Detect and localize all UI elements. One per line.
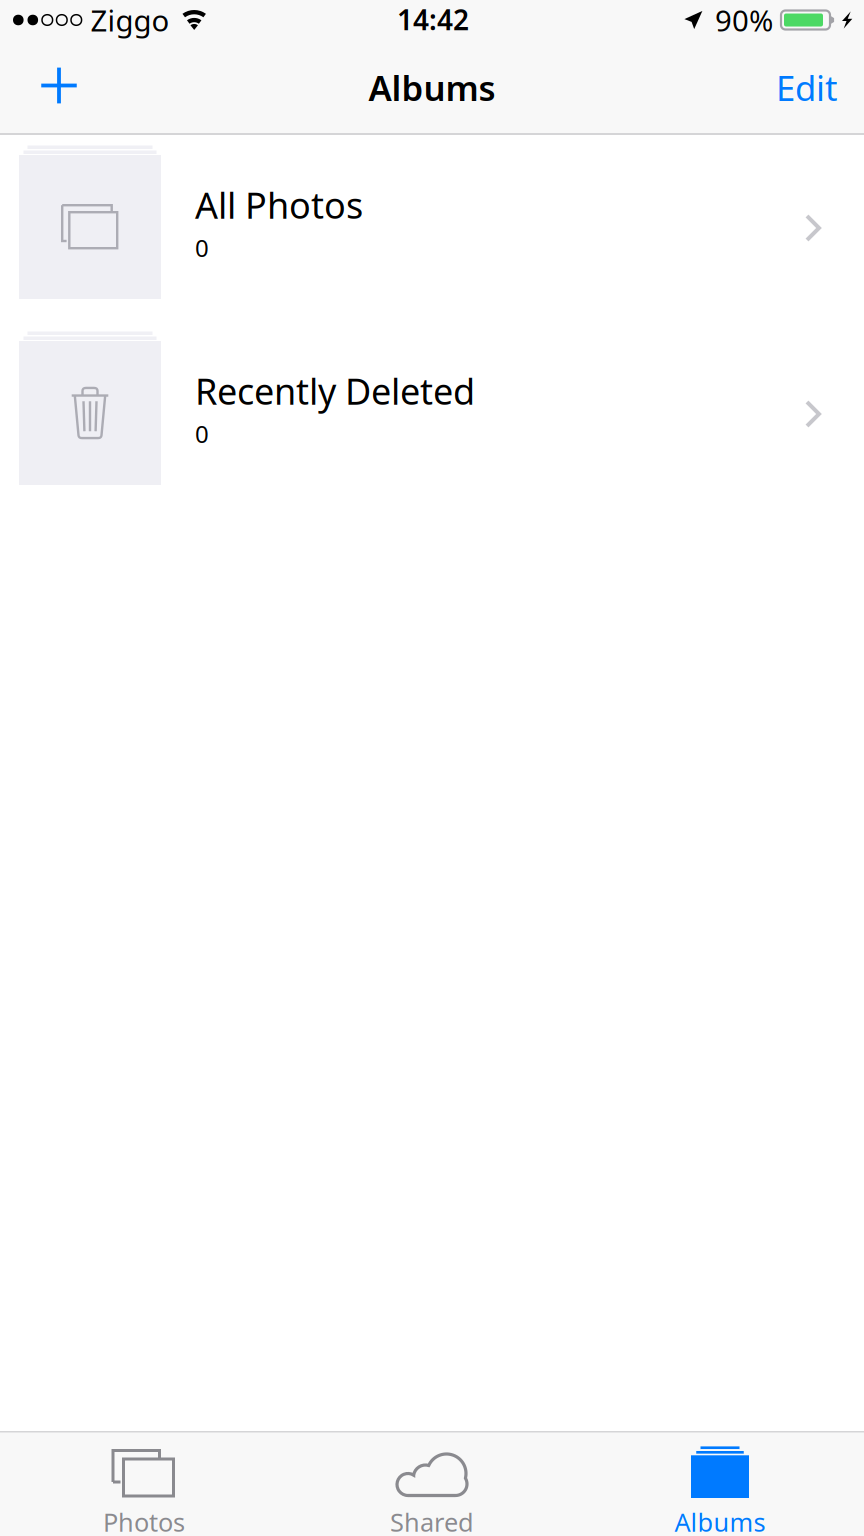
staticText: Recently Deleted: [195, 367, 475, 415]
button[interactable]: Shared: [288, 1431, 576, 1536]
staticText: Albums: [368, 64, 495, 110]
button[interactable]: Albums: [576, 1431, 864, 1536]
button[interactable]: Add Album: [20, 40, 98, 135]
button[interactable]: Edit: [742, 40, 838, 135]
staticText: 14:42: [397, 1, 469, 38]
staticText: Photos: [103, 1505, 185, 1536]
staticText: Shared: [390, 1505, 474, 1536]
staticText: All Photos: [195, 181, 363, 229]
staticText: 0: [195, 232, 209, 264]
staticText: 90%: [715, 0, 773, 39]
button[interactable]: Photos: [0, 1431, 288, 1536]
button[interactable]: Recently Deleted: [0, 321, 864, 507]
staticText: Edit: [776, 64, 838, 110]
staticText: 0: [195, 418, 209, 450]
staticText: Ziggo: [91, 0, 170, 39]
button[interactable]: All Photos: [0, 135, 864, 321]
staticText: Albums: [674, 1505, 765, 1536]
